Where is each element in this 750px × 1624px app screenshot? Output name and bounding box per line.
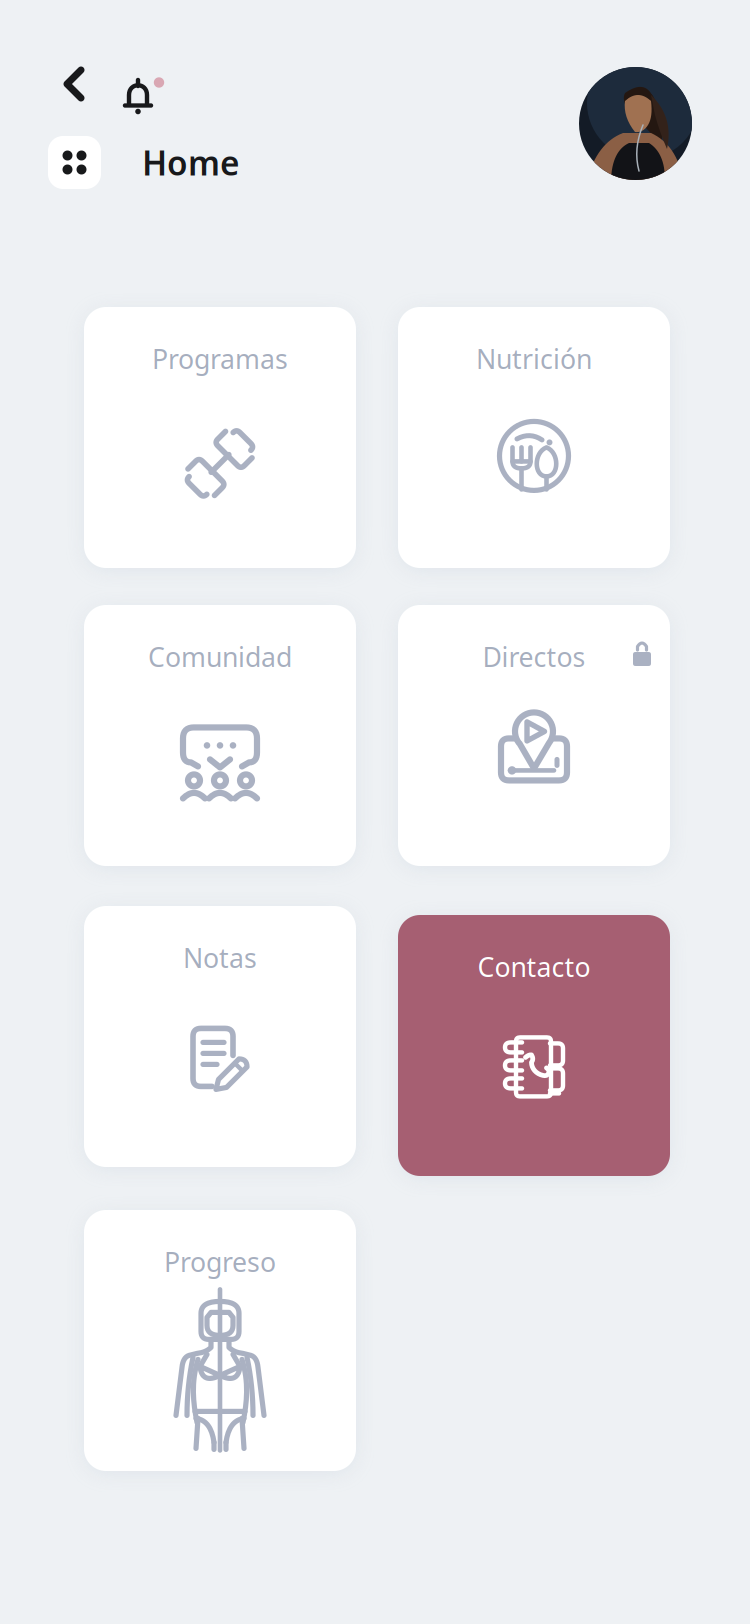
staticText: Progreso (164, 1244, 276, 1279)
button[interactable]: Menu (48, 136, 101, 189)
staticText: Notas (183, 940, 257, 975)
staticText: Programas (152, 341, 288, 376)
button[interactable]: Profile (579, 67, 692, 180)
button[interactable]: Directos (398, 605, 670, 866)
staticText: Contacto (477, 949, 590, 984)
staticText: Nutrición (476, 341, 592, 376)
staticText: Home (142, 140, 240, 185)
staticText: Directos (482, 639, 585, 674)
staticText: Comunidad (148, 639, 292, 674)
button[interactable]: Notifications (102, 42, 172, 126)
button[interactable]: Programas (84, 307, 356, 568)
button[interactable]: Comunidad (84, 605, 356, 866)
button[interactable]: Contacto (398, 915, 670, 1176)
button[interactable]: Nutrición (398, 307, 670, 568)
button[interactable]: Back (46, 42, 102, 126)
button[interactable]: Notas (84, 906, 356, 1167)
button[interactable]: Progreso (84, 1210, 356, 1471)
